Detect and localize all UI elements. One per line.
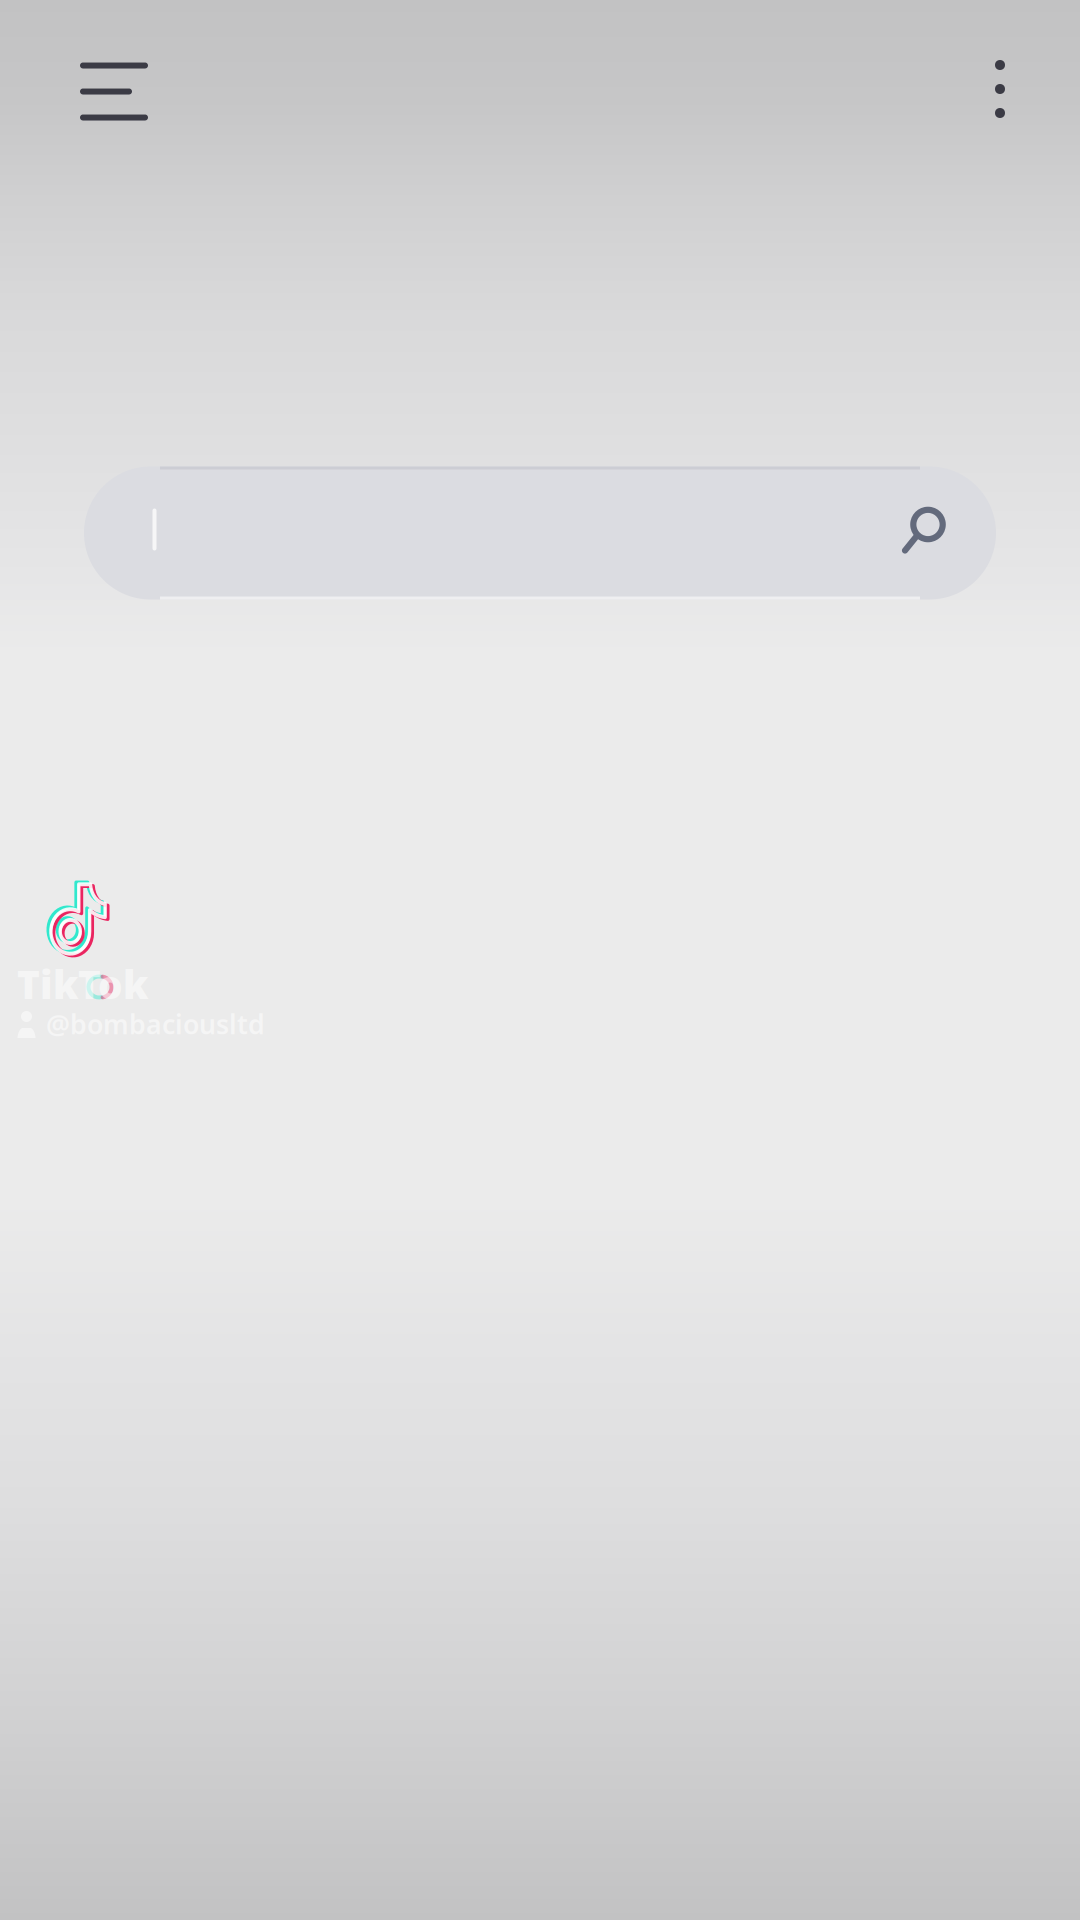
staticText: @bombaciousltd bbox=[46, 1006, 265, 1042]
button[interactable] bbox=[84, 466, 996, 599]
button[interactable]: Menu bbox=[39, 16, 189, 166]
button[interactable]: More options bbox=[935, 14, 1065, 164]
staticText: TikTok bbox=[17, 958, 148, 1010]
